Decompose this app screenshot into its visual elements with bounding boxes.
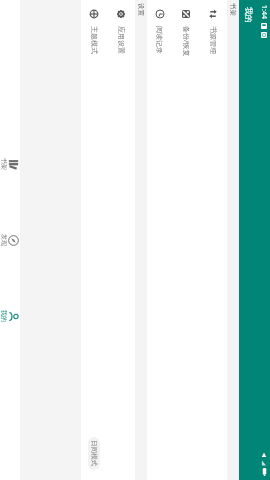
button[interactable]: 阅读记录 <box>147 0 173 480</box>
staticText: 我的 <box>244 7 254 23</box>
staticText: 阅读记录 <box>155 26 164 54</box>
button[interactable]: 书架 <box>0 126 20 202</box>
button[interactable]: 主题模式 <box>81 0 108 480</box>
staticText: 应用设置 <box>117 26 126 54</box>
staticText: 发现 <box>0 234 8 246</box>
button[interactable]: 发现 <box>0 202 20 278</box>
button[interactable]: 我的 <box>0 278 20 354</box>
staticText: 书源管理 <box>209 26 218 54</box>
staticText: 书架 <box>0 158 8 170</box>
staticText: 主题模式 <box>90 26 99 54</box>
staticText: 我的 <box>0 310 8 322</box>
staticText: 日间模式 <box>90 440 98 467</box>
staticText: 1:44 <box>259 5 269 19</box>
staticText: 备份/恢复 <box>181 26 191 57</box>
staticText: 书架 <box>229 3 237 16</box>
button[interactable]: 书源管理 <box>200 0 227 480</box>
staticText: 设置 <box>137 3 145 16</box>
button[interactable]: 应用设置 <box>108 0 135 480</box>
button[interactable]: 备份/恢复 <box>173 0 200 480</box>
